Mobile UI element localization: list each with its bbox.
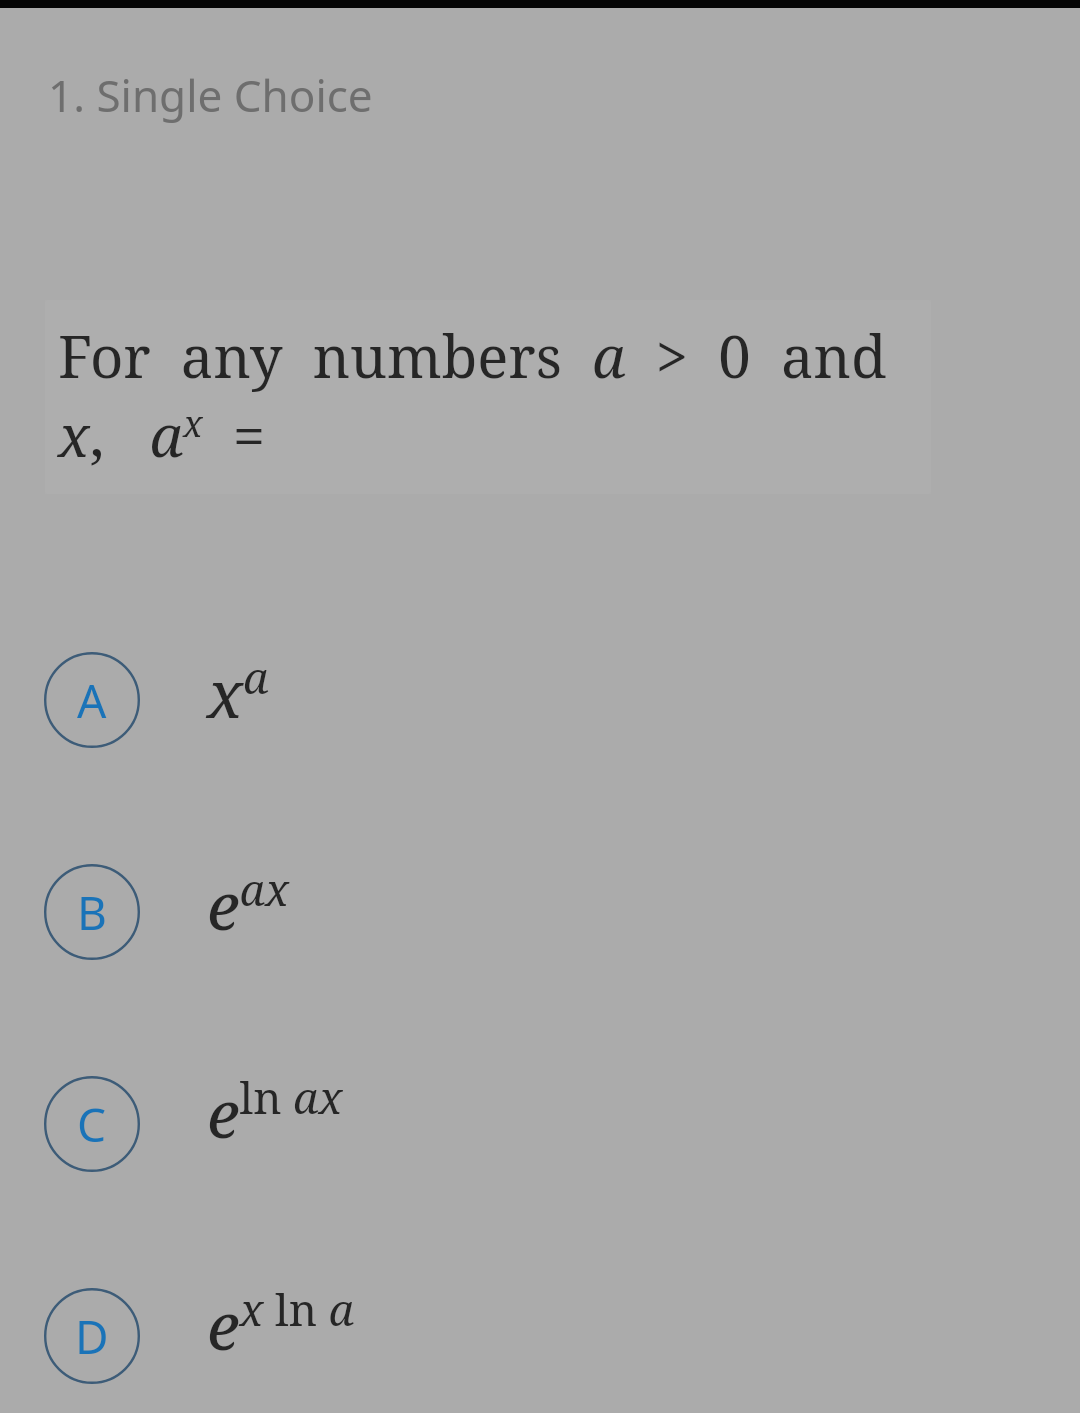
button[interactable]: B	[0, 853, 1080, 1065]
button[interactable]: C	[0, 1065, 1080, 1277]
other: Question	[45, 290, 931, 400]
staticText: ex ln a	[207, 1279, 354, 1370]
staticText: D	[75, 1305, 109, 1368]
staticText: eln ax	[207, 1067, 343, 1158]
staticText: B	[77, 881, 107, 944]
staticText: For any numbers a > 0 and x, ax =	[58, 316, 923, 474]
staticText: xa	[207, 647, 269, 738]
staticText: 1. Single Choice	[48, 65, 373, 125]
staticText: eax	[207, 859, 290, 950]
staticText: A	[77, 669, 107, 732]
staticText: C	[77, 1093, 107, 1156]
button[interactable]: D	[0, 1277, 1080, 1413]
button[interactable]: A	[0, 641, 1080, 853]
